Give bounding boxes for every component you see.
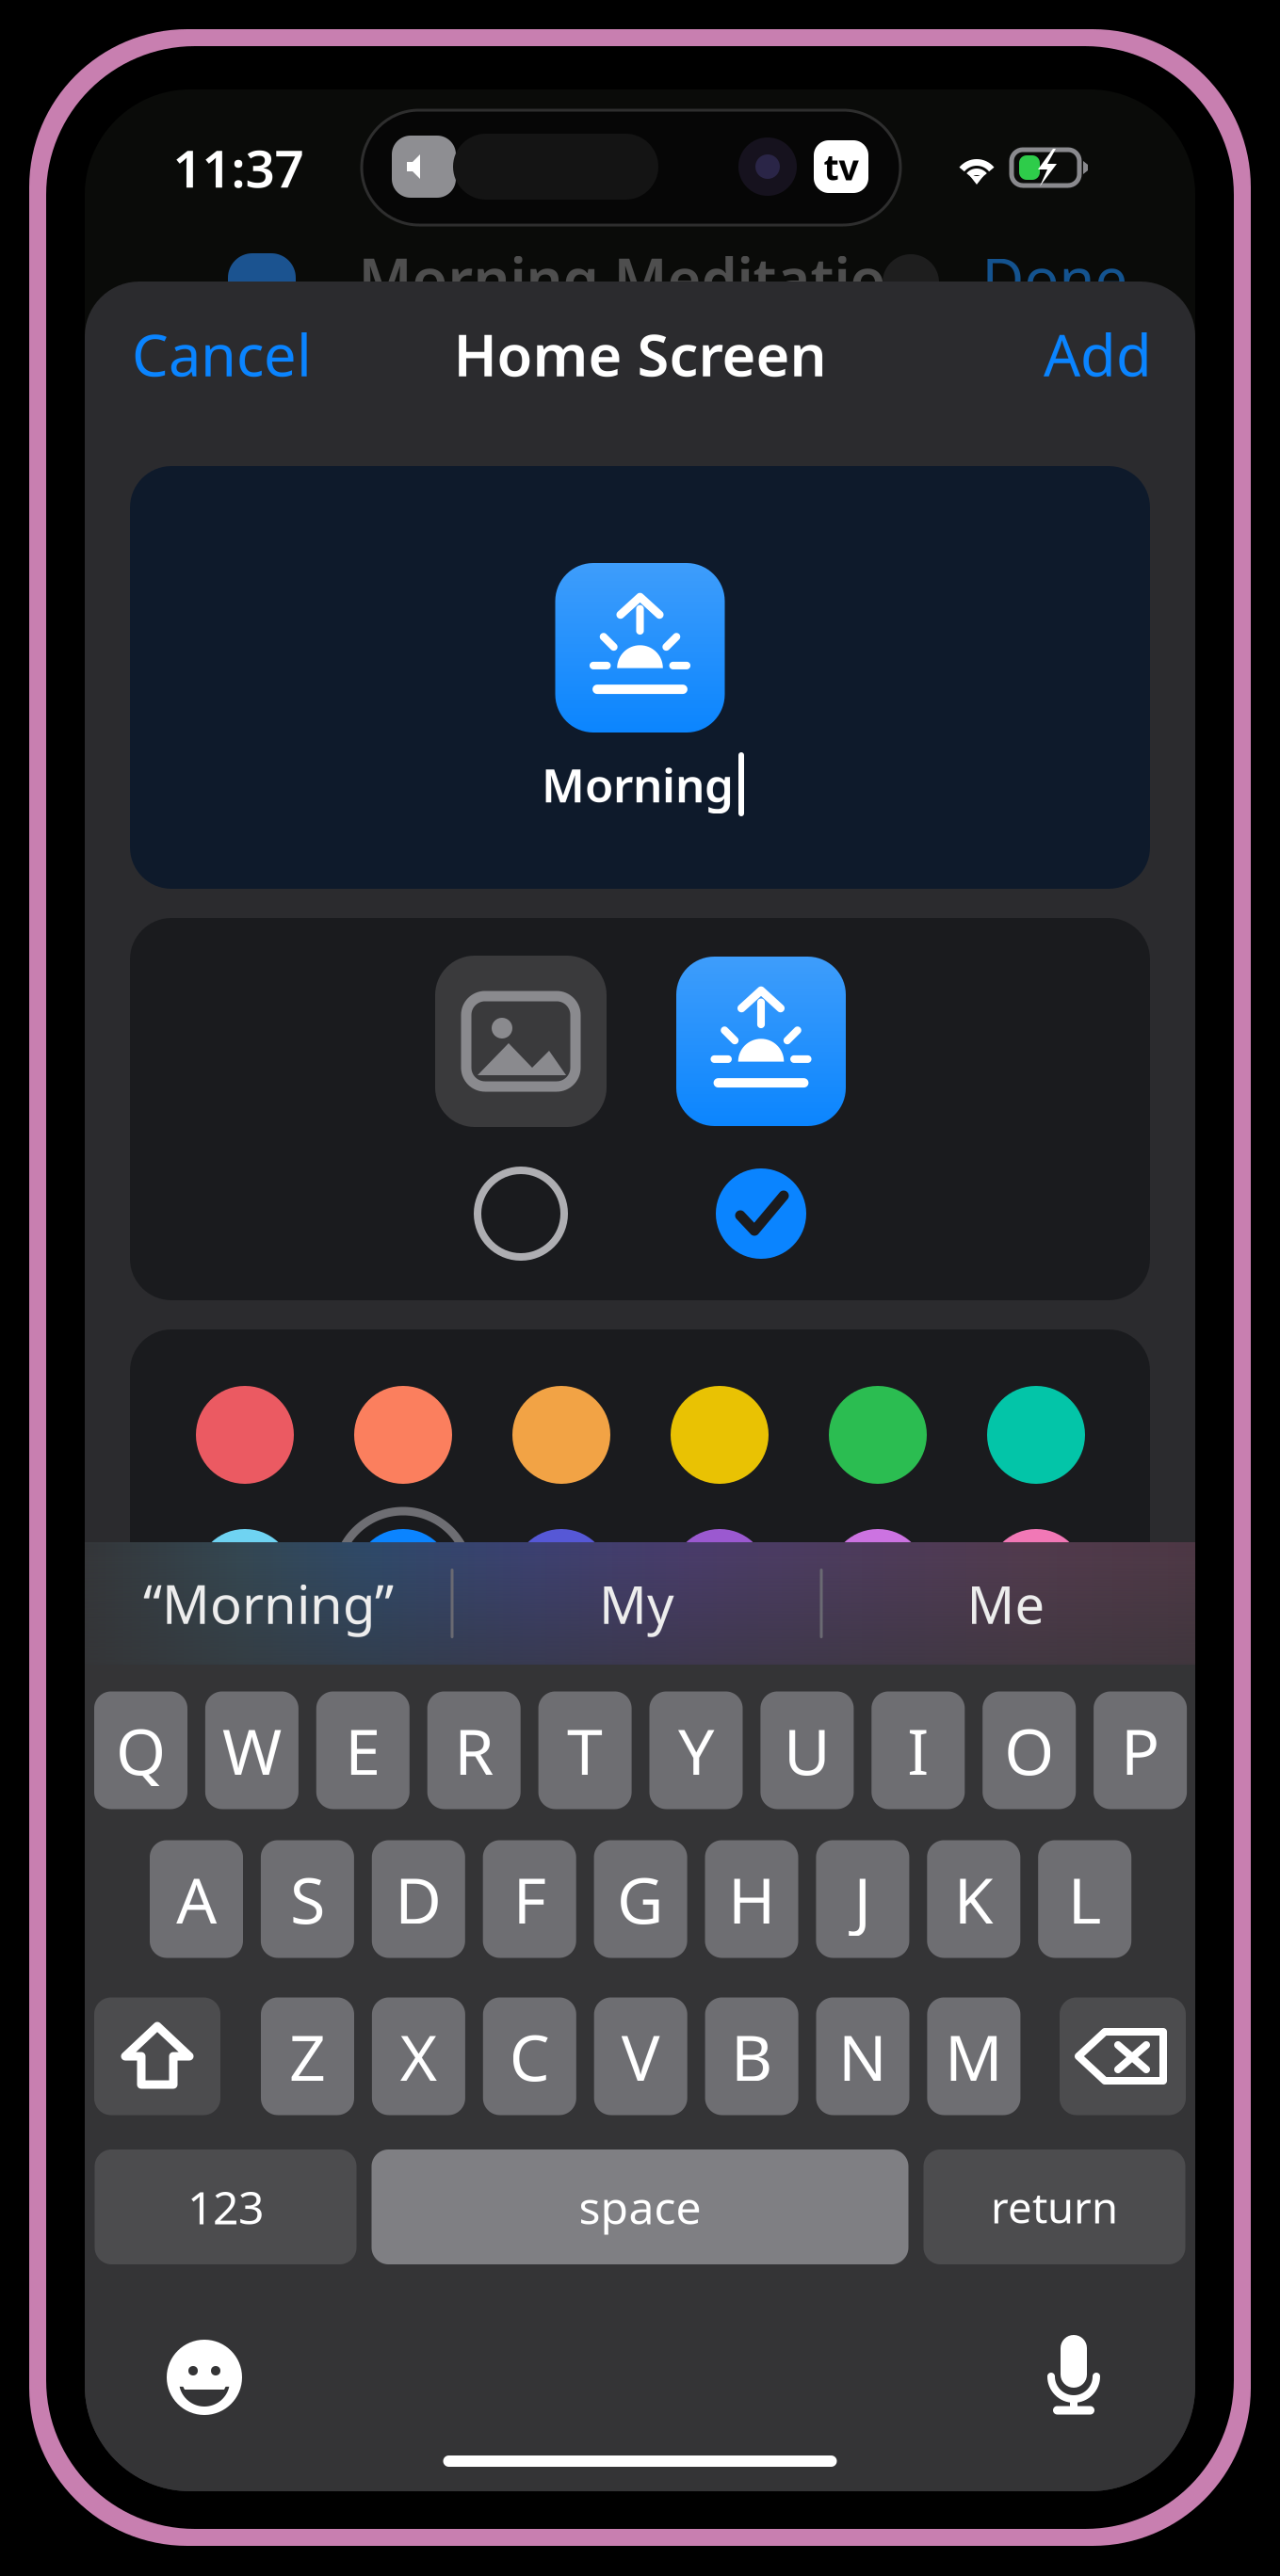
staticText: Morning Meditation xyxy=(358,239,923,316)
staticText: My xyxy=(599,1568,674,1638)
button[interactable]: H xyxy=(705,1840,798,1958)
button[interactable]: Shift xyxy=(94,1997,220,2115)
button[interactable]: 123 xyxy=(95,2149,356,2264)
staticText: Home Screen xyxy=(454,316,826,392)
staticText: S xyxy=(290,1856,325,1942)
button[interactable]: Y xyxy=(649,1691,743,1809)
staticText: Done xyxy=(982,239,1128,316)
button[interactable]: I xyxy=(872,1691,965,1809)
staticText: P xyxy=(1121,1708,1160,1793)
staticText: U xyxy=(784,1708,831,1793)
button[interactable]: Z xyxy=(261,1997,354,2115)
staticText: Q xyxy=(116,1708,166,1793)
button[interactable]: “Morning” xyxy=(89,1542,447,1665)
button[interactable]: return xyxy=(924,2149,1185,2264)
staticText: return xyxy=(991,2179,1118,2235)
staticText: H xyxy=(728,1856,775,1942)
button[interactable]: J xyxy=(816,1840,909,1958)
button[interactable]: Cancel xyxy=(132,301,377,407)
button[interactable]: G xyxy=(594,1840,687,1958)
staticText: T xyxy=(567,1708,603,1793)
staticText: Cancel xyxy=(132,316,312,392)
staticText: B xyxy=(731,2014,772,2099)
button[interactable]: O xyxy=(983,1691,1076,1809)
button[interactable]: My xyxy=(458,1542,816,1665)
staticText: “Morning” xyxy=(143,1568,394,1638)
button[interactable]: E xyxy=(316,1691,410,1809)
button[interactable]: Emoji keyboard xyxy=(167,2340,242,2415)
staticText: K xyxy=(954,1856,993,1942)
button[interactable]: Me xyxy=(827,1542,1185,1665)
staticText: M xyxy=(945,2014,1003,2099)
button[interactable]: R xyxy=(427,1691,521,1809)
staticText: A xyxy=(176,1856,217,1942)
button[interactable]: D xyxy=(372,1840,465,1958)
staticText: Y xyxy=(678,1708,714,1793)
button[interactable]: M xyxy=(927,1997,1020,2115)
button[interactable]: S xyxy=(261,1840,354,1958)
staticText: W xyxy=(222,1708,282,1793)
staticText: Z xyxy=(289,2014,326,2099)
button[interactable]: K xyxy=(927,1840,1020,1958)
button[interactable]: Delete xyxy=(1060,1997,1186,2115)
button[interactable]: Q xyxy=(94,1691,187,1809)
button[interactable]: F xyxy=(483,1840,576,1958)
staticText: V xyxy=(621,2014,660,2099)
button[interactable]: T xyxy=(538,1691,632,1809)
button[interactable]: V xyxy=(594,1997,687,2115)
staticText: J xyxy=(854,1856,872,1942)
button[interactable]: L xyxy=(1038,1840,1131,1958)
staticText: F xyxy=(513,1856,546,1942)
button[interactable]: B xyxy=(705,1997,798,2115)
button[interactable]: X xyxy=(372,1997,465,2115)
staticText: L xyxy=(1068,1856,1102,1942)
staticText: D xyxy=(395,1856,442,1942)
staticText: E xyxy=(345,1708,381,1793)
staticText: 123 xyxy=(187,2177,264,2237)
button[interactable]: N xyxy=(816,1997,909,2115)
staticText: Add xyxy=(1044,316,1152,392)
staticText: Me xyxy=(967,1568,1045,1638)
staticText: Morning xyxy=(542,753,734,815)
button[interactable]: Add xyxy=(982,301,1152,407)
staticText: 11:37 xyxy=(173,133,304,202)
button[interactable]: W xyxy=(205,1691,298,1809)
button[interactable]: Dictate xyxy=(1046,2334,1101,2415)
staticText: N xyxy=(838,2014,887,2099)
button[interactable]: C xyxy=(483,1997,576,2115)
staticText: C xyxy=(509,2014,550,2099)
staticText: G xyxy=(617,1856,664,1942)
button[interactable]: space xyxy=(372,2149,908,2264)
button[interactable]: A xyxy=(150,1840,243,1958)
button[interactable]: P xyxy=(1094,1691,1187,1809)
staticText: tv xyxy=(824,143,859,190)
staticText: X xyxy=(400,2014,437,2099)
staticText: space xyxy=(579,2177,701,2237)
staticText: I xyxy=(907,1708,929,1793)
button[interactable]: U xyxy=(760,1691,854,1809)
staticText: R xyxy=(454,1708,494,1793)
staticText: O xyxy=(1004,1708,1054,1793)
